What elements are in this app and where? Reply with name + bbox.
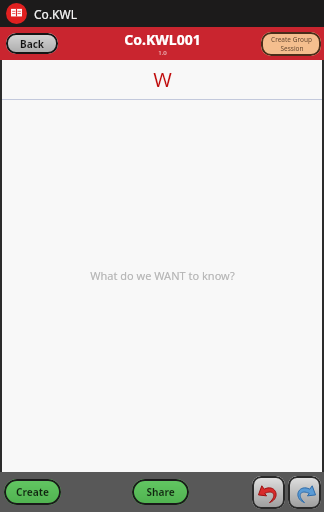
button[interactable]: Undo bbox=[252, 476, 285, 509]
staticText: Create bbox=[16, 485, 49, 499]
staticText: What do we WANT to know? bbox=[90, 268, 235, 283]
staticText: 1.0 bbox=[158, 49, 167, 57]
staticText: W bbox=[153, 66, 172, 93]
button[interactable]: Back bbox=[6, 33, 58, 54]
staticText: Co.KWL001 bbox=[124, 30, 201, 49]
staticText: Session bbox=[280, 44, 304, 53]
staticText: Share bbox=[146, 485, 175, 499]
button[interactable]: Create bbox=[4, 479, 61, 505]
staticText: Back bbox=[20, 37, 44, 51]
staticText: Co.KWL bbox=[34, 6, 77, 22]
button[interactable]: Redo bbox=[288, 476, 321, 509]
button[interactable]: Create Group bbox=[261, 32, 321, 56]
staticText: Create Group bbox=[271, 35, 312, 44]
button[interactable]: Share bbox=[132, 479, 189, 505]
